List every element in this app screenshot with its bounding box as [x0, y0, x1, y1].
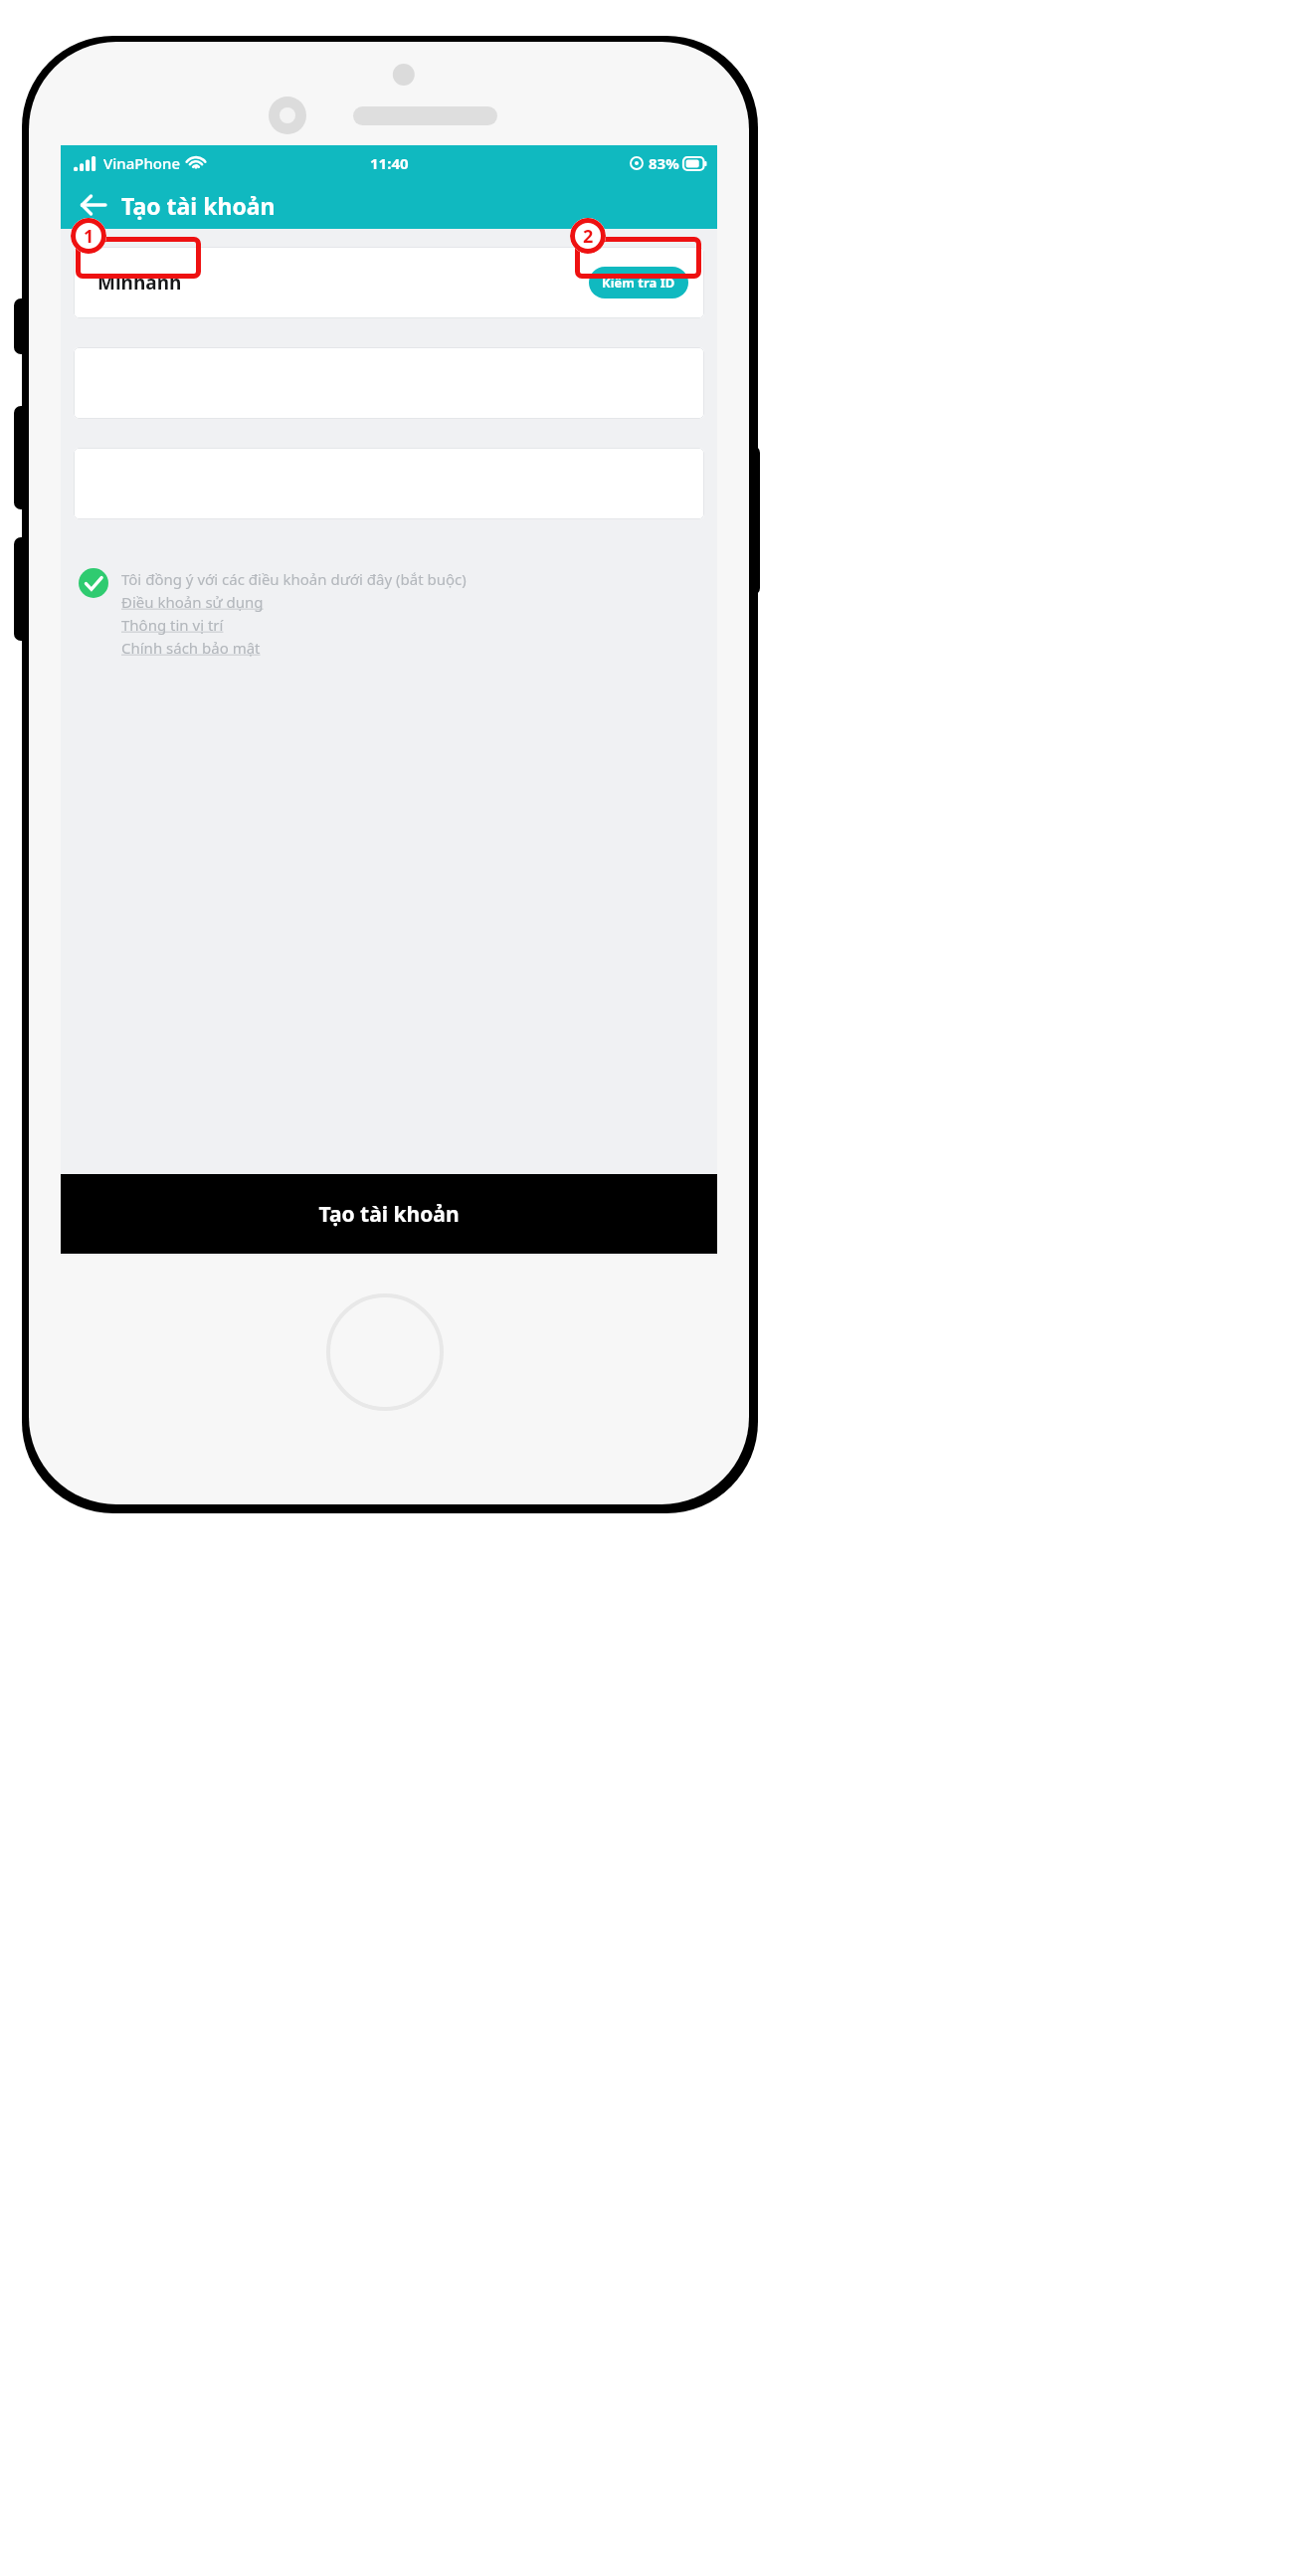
button[interactable]: Tạo tài khoản: [61, 1174, 717, 1254]
staticText: 1: [84, 224, 94, 249]
staticText: 83%: [649, 153, 679, 173]
staticText: Tạo tài khoản: [318, 1200, 460, 1229]
staticText: Tôi đồng ý với các điều khoản dưới đây (…: [121, 569, 467, 589]
staticText: Kiểm tra ID: [602, 274, 675, 292]
button[interactable]: [74, 347, 704, 419]
staticText: Minhanh: [97, 270, 182, 296]
staticText: 2: [583, 224, 594, 249]
staticText: VinaPhone: [103, 153, 180, 173]
button[interactable]: Back: [75, 186, 112, 224]
button[interactable]: Thông tin vị trí: [121, 615, 224, 635]
button[interactable]: Điều khoản sử dụng: [121, 592, 264, 612]
button[interactable]: Minhanh: [74, 247, 704, 318]
button[interactable]: [74, 448, 704, 519]
button[interactable]: Chính sách bảo mật: [121, 638, 261, 658]
staticText: 11:40: [370, 153, 409, 173]
button[interactable]: Kiểm tra ID: [589, 267, 688, 298]
staticText: Tạo tài khoản: [121, 190, 276, 221]
button[interactable]: Agree to terms: [78, 567, 109, 599]
